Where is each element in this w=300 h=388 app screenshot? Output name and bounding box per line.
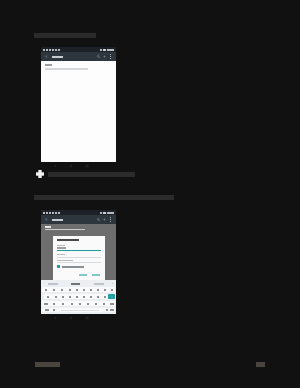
button[interactable]: a [44,294,52,299]
button[interactable]: Expand suggestions [110,283,115,284]
button[interactable]: More options [108,217,113,222]
button[interactable]: b [84,301,92,306]
button[interactable]: More options [108,54,113,59]
button[interactable]: e [58,287,66,292]
button[interactable]: m [100,301,108,306]
button[interactable]: ?123 [42,308,51,312]
button[interactable]: l [101,294,108,299]
button[interactable]: v [76,301,84,306]
button[interactable]: u [87,287,94,292]
button[interactable]: Recent apps [84,315,89,320]
button[interactable] [87,283,110,285]
button[interactable]: i [94,287,101,292]
button[interactable]: shift [42,301,49,306]
button[interactable]: Add [102,54,107,59]
button[interactable]: Back [44,54,49,59]
button[interactable]: z [49,301,58,306]
button[interactable]: Back [52,163,57,168]
button[interactable]: Add [102,217,107,222]
button[interactable] [78,273,88,277]
button[interactable] [42,283,64,285]
button[interactable]: q [42,287,50,292]
button[interactable]: d [59,294,66,299]
button[interactable]: t [73,287,80,292]
button[interactable]: Home [68,315,73,320]
button[interactable]: f [66,294,73,299]
button[interactable]: h [80,294,87,299]
button[interactable]: , [51,308,56,312]
button[interactable]: o [101,287,108,292]
button[interactable]: Search [96,54,101,59]
button[interactable]: p [108,287,115,292]
button[interactable]: x [58,301,67,306]
button[interactable] [57,265,101,268]
button[interactable]: Back [52,315,57,320]
button[interactable]: c [67,301,76,306]
button[interactable]: Recent apps [84,163,89,168]
button[interactable]: enter [108,294,115,299]
button[interactable]: Home [68,163,73,168]
button[interactable]: g [73,294,80,299]
button[interactable] [64,283,87,285]
button[interactable]: r [66,287,73,292]
button[interactable]: y [80,287,87,292]
button[interactable]: . [104,308,109,312]
button[interactable]: del [108,301,115,306]
button[interactable]: emoji [109,308,115,312]
button[interactable]: Search [96,217,101,222]
button[interactable]: space [56,308,104,312]
button[interactable]: s [52,294,59,299]
button[interactable]: n [92,301,100,306]
button[interactable]: j [87,294,94,299]
button[interactable]: Back [44,217,49,222]
button[interactable]: w [50,287,58,292]
button[interactable] [91,273,101,277]
button[interactable]: k [94,294,101,299]
